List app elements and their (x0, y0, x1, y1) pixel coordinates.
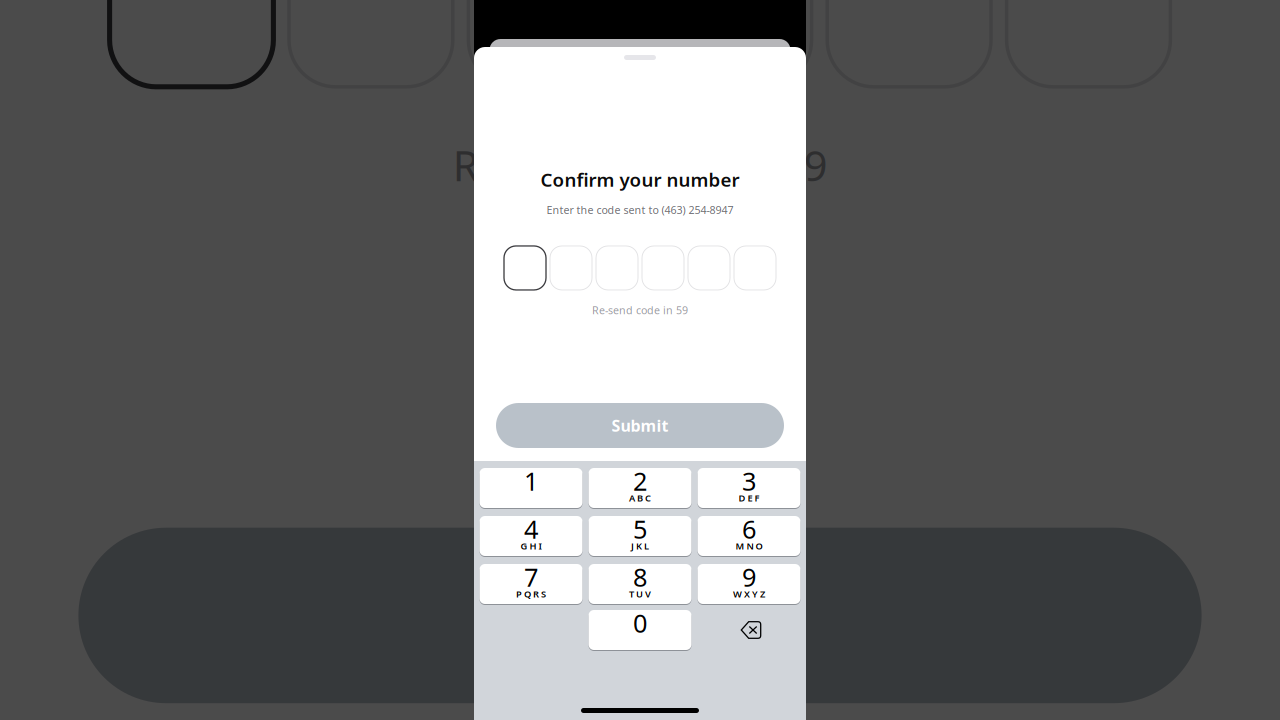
button[interactable]: 2 (588, 468, 691, 508)
staticText: 5 (633, 512, 647, 546)
button[interactable]: 3 (697, 468, 800, 508)
button[interactable]: 0 (588, 610, 691, 650)
staticText: 9 (742, 560, 756, 594)
staticText: 6 (742, 512, 756, 546)
button[interactable]: 4 (479, 516, 582, 556)
button[interactable]: Verification code (504, 246, 776, 290)
staticText: 2 (633, 464, 647, 498)
staticText: 7 (524, 560, 538, 594)
staticText: PQRS (516, 588, 546, 600)
button[interactable]: 8 (588, 564, 691, 604)
staticText: 9 (742, 560, 756, 594)
staticText: 0 (633, 606, 647, 640)
button[interactable]: Delete (697, 610, 800, 650)
button[interactable]: 1 (479, 468, 582, 508)
button[interactable]: Submit (496, 403, 784, 448)
button[interactable]: 6 (697, 516, 800, 556)
staticText: 8 (633, 560, 647, 594)
button[interactable]: 3 (697, 468, 800, 508)
button[interactable]: 6 (697, 516, 800, 556)
staticText: 4 (524, 512, 538, 546)
button[interactable]: 9 (697, 564, 800, 604)
staticText: 6 (742, 512, 756, 546)
staticText: Re-send code in 59 (592, 303, 688, 317)
staticText: DEF (738, 492, 759, 504)
button[interactable]: 4 (479, 516, 582, 556)
staticText: JKL (631, 540, 649, 552)
button[interactable]: Submit (496, 403, 784, 448)
staticText: Submit (611, 415, 668, 436)
button[interactable]: 5 (588, 516, 691, 556)
button[interactable]: 5 (588, 516, 691, 556)
staticText: WXYZ (733, 588, 765, 600)
staticText: Enter the code sent to (463) 254-8947 (546, 203, 733, 217)
button[interactable]: 7 (479, 564, 582, 604)
staticText: 2 (633, 464, 647, 498)
staticText: 3 (742, 464, 756, 498)
staticText: Submit (611, 415, 668, 436)
staticText: ABC (629, 492, 651, 504)
staticText: GHI (520, 540, 541, 552)
staticText: JKL (631, 540, 649, 552)
staticText: TUV (629, 588, 651, 600)
staticText: 0 (633, 606, 647, 640)
button[interactable]: Verification code (504, 246, 776, 290)
staticText: PQRS (516, 588, 546, 600)
button[interactable]: Delete (697, 610, 800, 650)
staticText: Re-send code in 59 (592, 303, 688, 317)
staticText: 7 (524, 560, 538, 594)
button[interactable]: 7 (479, 564, 582, 604)
staticText: 1 (524, 464, 538, 498)
button[interactable]: 1 (479, 468, 582, 508)
staticText: 3 (742, 464, 756, 498)
staticText: 8 (633, 560, 647, 594)
staticText: DEF (738, 492, 759, 504)
button[interactable]: 2 (588, 468, 691, 508)
staticText: ABC (629, 492, 651, 504)
staticText: GHI (520, 540, 541, 552)
button[interactable]: 8 (588, 564, 691, 604)
staticText: MNO (735, 540, 762, 552)
staticText: 5 (633, 512, 647, 546)
staticText: WXYZ (733, 588, 765, 600)
staticText: MNO (735, 540, 762, 552)
staticText: TUV (629, 588, 651, 600)
staticText: 4 (524, 512, 538, 546)
staticText: 1 (524, 464, 538, 498)
staticText: Confirm your number (540, 167, 739, 192)
staticText: Enter the code sent to (463) 254-8947 (546, 203, 733, 217)
button[interactable]: 9 (697, 564, 800, 604)
staticText: Confirm your number (540, 167, 739, 192)
button[interactable]: 0 (588, 610, 691, 650)
